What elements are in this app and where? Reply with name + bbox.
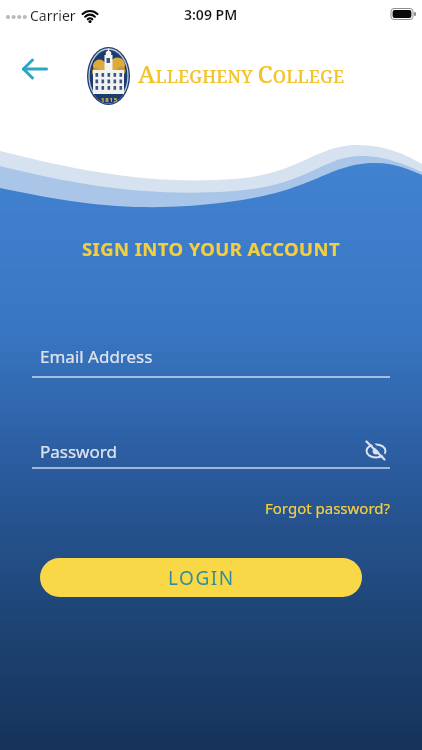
- staticText: 1815: [101, 96, 118, 104]
- button[interactable]: Password: [32, 424, 390, 469]
- staticText: Email Address: [40, 345, 153, 368]
- staticText: SIGN INTO YOUR ACCOUNT: [0, 236, 422, 261]
- staticText: 3:09 PM: [184, 5, 238, 24]
- button[interactable]: LOGIN: [40, 558, 362, 597]
- staticText: Carrier: [30, 6, 76, 25]
- staticText: Password: [40, 440, 117, 463]
- button[interactable]: Forgot password?: [265, 498, 391, 518]
- button[interactable]: [18, 53, 52, 85]
- button[interactable]: Email Address: [32, 332, 390, 378]
- staticText: Forgot password?: [265, 498, 391, 518]
- staticText: LOGIN: [168, 565, 235, 591]
- staticText: ALLEGHENY COLLEGE: [138, 57, 345, 90]
- button[interactable]: [364, 439, 390, 463]
